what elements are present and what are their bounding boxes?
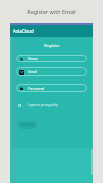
button[interactable]: Email (16, 67, 87, 76)
other: Email (18, 69, 24, 75)
staticText: Password (28, 86, 45, 91)
button[interactable]: Password (16, 84, 87, 92)
staticText: AsiaCloud (13, 28, 34, 34)
other: Name (18, 56, 24, 62)
button[interactable]: REGISTER (18, 121, 37, 129)
button[interactable]: Name (16, 55, 87, 62)
staticText: Register (12, 43, 92, 48)
staticText: Name (28, 56, 39, 61)
button[interactable]: I agree to privacy policy (17, 101, 55, 109)
staticText: Register with Email (0, 8, 103, 15)
staticText: Email (28, 69, 38, 74)
staticText: I agree to privacy policy (28, 103, 58, 107)
staticText: REGISTER (21, 123, 35, 127)
other: Password (18, 85, 24, 91)
